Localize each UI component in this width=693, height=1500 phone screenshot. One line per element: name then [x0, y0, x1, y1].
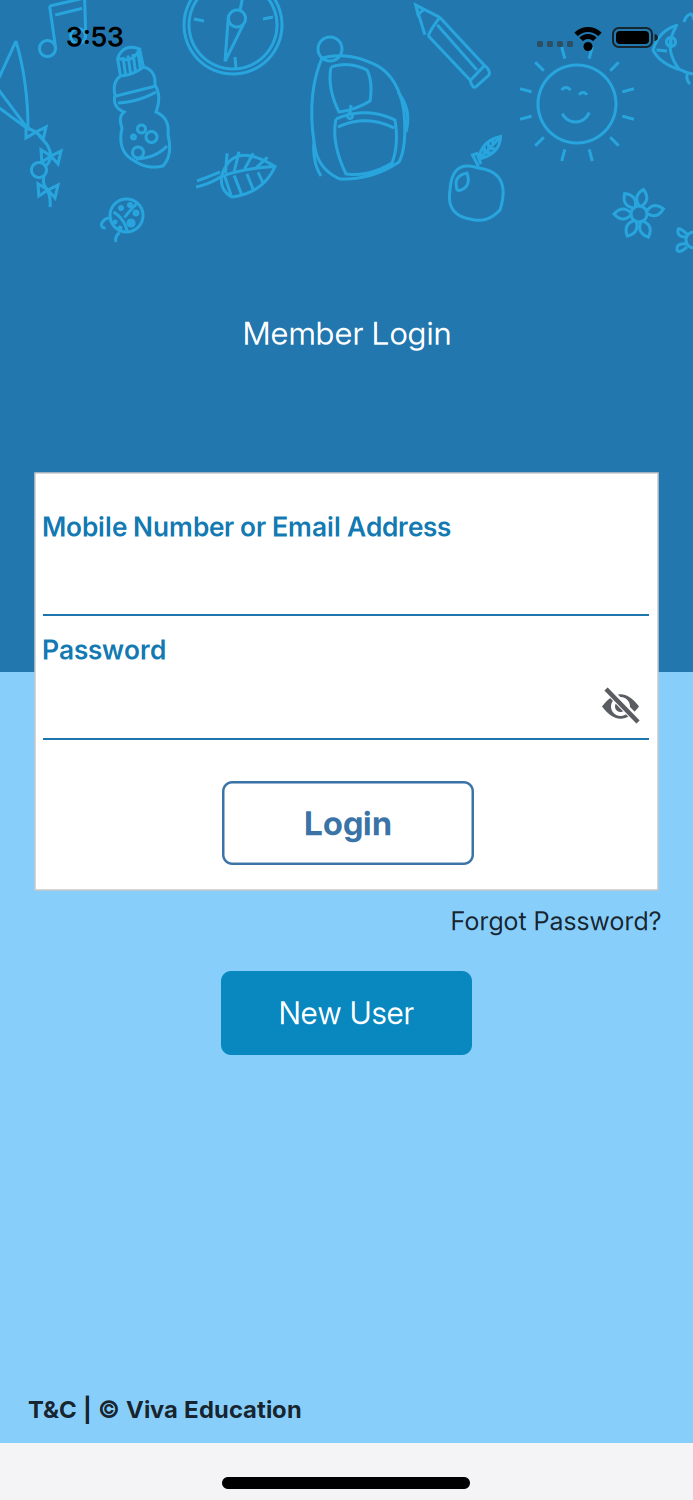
button[interactable]: T&C | © Viva Education — [28, 1395, 302, 1423]
staticText: Member Login — [242, 314, 451, 352]
staticText: New User — [278, 995, 414, 1031]
staticText: Login — [304, 803, 392, 843]
button[interactable]: Forgot Password? — [450, 906, 661, 936]
button[interactable]: Login — [222, 781, 474, 865]
button[interactable]: Password — [42, 632, 649, 740]
button[interactable]: Mobile Number or Email Address — [42, 508, 649, 616]
staticText: Forgot Password? — [450, 906, 661, 936]
staticText: T&C | © Viva Education — [28, 1395, 302, 1423]
button[interactable] — [598, 684, 644, 728]
button[interactable]: New User — [221, 971, 472, 1055]
staticText: 3:53 — [66, 21, 124, 53]
staticText: Password — [42, 634, 166, 665]
staticText: Mobile Number or Email Address — [42, 511, 451, 542]
